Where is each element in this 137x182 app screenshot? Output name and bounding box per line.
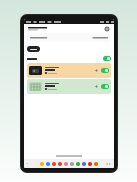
button[interactable]: Settings bbox=[104, 26, 110, 32]
button[interactable]: Add bbox=[27, 79, 111, 94]
button[interactable]: Toggle bbox=[101, 84, 109, 89]
button[interactable]: Add bbox=[27, 63, 111, 78]
button[interactable]: Add bbox=[94, 84, 99, 89]
button[interactable]: App bbox=[76, 162, 80, 166]
button[interactable]: App bbox=[82, 162, 86, 166]
button[interactable]: App bbox=[64, 162, 68, 166]
button[interactable]: App bbox=[88, 162, 92, 166]
button[interactable]: App bbox=[52, 162, 56, 166]
button[interactable]: Toggle bbox=[101, 68, 109, 73]
button[interactable] bbox=[27, 46, 40, 52]
button[interactable]: App bbox=[40, 162, 44, 166]
button[interactable]: Toggle bbox=[103, 56, 111, 61]
button[interactable]: App bbox=[70, 162, 74, 166]
button[interactable]: App bbox=[58, 162, 62, 166]
button[interactable]: App bbox=[46, 162, 50, 166]
button[interactable]: App bbox=[94, 162, 98, 166]
button[interactable] bbox=[27, 33, 111, 42]
button[interactable]: Add bbox=[94, 68, 99, 73]
